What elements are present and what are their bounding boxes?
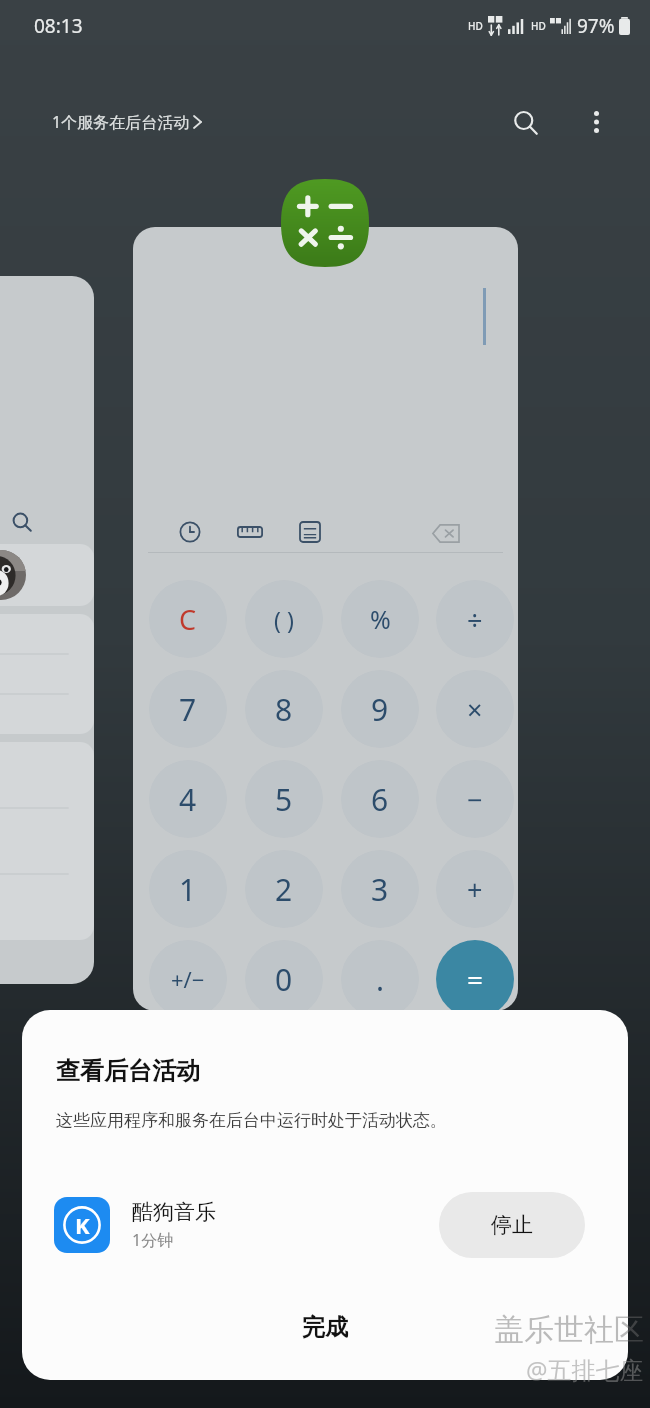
button[interactable]: More options	[574, 100, 618, 144]
button[interactable]: %	[341, 580, 419, 658]
staticText: K	[75, 1210, 90, 1240]
button[interactable]: ÷	[436, 580, 514, 658]
button[interactable]: Unit converter	[231, 513, 269, 551]
button[interactable]: ( )	[245, 580, 323, 658]
button[interactable]: 7	[149, 670, 227, 748]
staticText: C	[179, 601, 197, 638]
button[interactable]: Search	[502, 99, 548, 145]
staticText: 酷狗音乐	[132, 1199, 216, 1225]
staticText: 7	[179, 689, 197, 730]
button[interactable]: 停止	[439, 1192, 585, 1258]
staticText: 4	[179, 779, 197, 820]
staticText: HD	[531, 19, 546, 33]
button[interactable]: History	[171, 513, 209, 551]
staticText: +/−	[171, 964, 205, 994]
staticText: ( )	[274, 604, 294, 635]
button[interactable]: 3	[341, 850, 419, 928]
staticText: +	[467, 871, 483, 908]
staticText: 1分钟	[132, 1229, 174, 1251]
button[interactable]: 4	[149, 760, 227, 838]
button[interactable]: 8	[245, 670, 323, 748]
button[interactable]: 5	[245, 760, 323, 838]
staticText: 1	[179, 869, 197, 910]
staticText: 2	[275, 869, 293, 910]
button[interactable]: 6	[341, 760, 419, 838]
staticText: 0	[275, 959, 293, 1000]
button[interactable]: K	[22, 1175, 628, 1275]
button[interactable]: 完成	[210, 1292, 440, 1362]
staticText: 3	[371, 869, 389, 910]
staticText: ÷	[467, 601, 483, 638]
staticText: 08:13	[34, 13, 83, 39]
staticText: 停止	[491, 1212, 533, 1238]
staticText: =	[467, 960, 484, 998]
staticText: 9	[371, 689, 389, 730]
staticText: 完成	[302, 1313, 348, 1342]
button[interactable]: 1	[149, 850, 227, 928]
button[interactable]: +	[436, 850, 514, 928]
button[interactable]: ×	[436, 670, 514, 748]
staticText: 5	[275, 779, 293, 820]
button[interactable]: Backspace	[425, 513, 465, 553]
button[interactable]	[0, 276, 94, 984]
staticText: HD	[468, 19, 483, 33]
staticText: 6	[371, 779, 389, 820]
staticText: @五排七座	[526, 1353, 644, 1386]
staticText: .	[376, 959, 385, 1000]
staticText: 盖乐世社区	[494, 1311, 644, 1349]
button[interactable]: −	[436, 760, 514, 838]
button[interactable]: C	[149, 580, 227, 658]
button[interactable]: Scientific calculator	[291, 513, 329, 551]
button[interactable]: 0	[245, 940, 323, 1011]
staticText: 查看后台活动	[56, 1056, 200, 1086]
staticText: 1个服务在后台活动	[52, 111, 190, 133]
button[interactable]: +/−	[149, 940, 227, 1011]
staticText: −	[467, 781, 483, 818]
staticText: ×	[467, 691, 483, 728]
button[interactable]: =	[436, 940, 514, 1011]
button[interactable]: 9	[341, 670, 419, 748]
button[interactable]: .	[341, 940, 419, 1011]
button[interactable]	[0, 544, 94, 606]
button[interactable]: 1个服务在后台活动	[52, 111, 202, 133]
staticText: 8	[275, 689, 293, 730]
button[interactable]: History	[133, 227, 518, 1011]
staticText: %	[370, 602, 391, 636]
staticText: 这些应用程序和服务在后台中运行时处于活动状态。	[56, 1110, 447, 1131]
staticText: 97%	[577, 13, 615, 39]
button[interactable]: 2	[245, 850, 323, 928]
